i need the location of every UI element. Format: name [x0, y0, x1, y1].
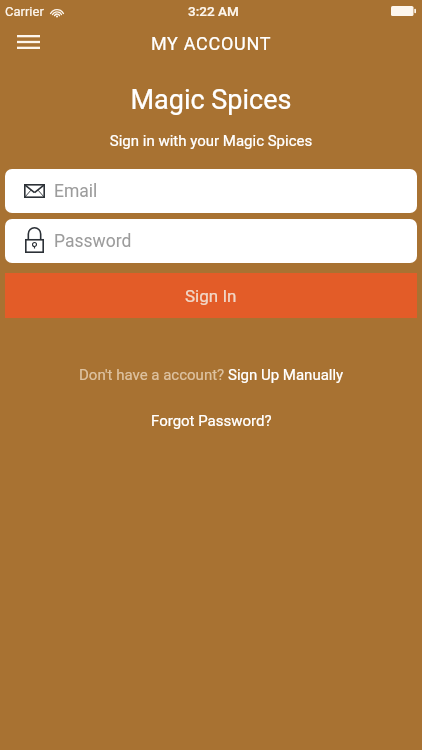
staticText: 3:22 AM: [188, 3, 239, 19]
button[interactable]: Email: [5, 169, 417, 213]
button[interactable]: Open navigation menu: [7, 26, 50, 58]
button[interactable]: Forgot Password?: [151, 412, 272, 430]
staticText: Carrier: [5, 4, 44, 19]
staticText: Sign In: [185, 286, 237, 306]
staticText: Magic Spices: [0, 84, 422, 116]
staticText: Password: [54, 231, 132, 252]
staticText: Email: [54, 181, 98, 202]
staticText: Sign in with your Magic Spices: [0, 132, 422, 150]
staticText: Don't have a account?: [79, 366, 228, 384]
staticText: MY ACCOUNT: [0, 33, 422, 54]
button[interactable]: Sign Up Manually: [228, 366, 344, 384]
button[interactable]: Sign In: [5, 273, 417, 318]
button[interactable]: Password: [5, 219, 417, 263]
